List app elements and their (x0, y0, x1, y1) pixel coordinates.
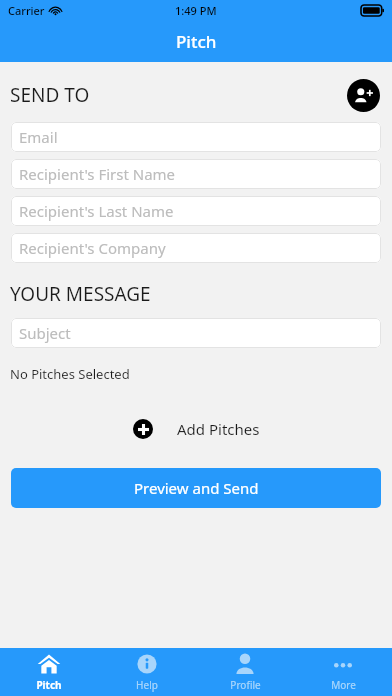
staticText: Preview and Send (134, 478, 259, 498)
button[interactable]: Recipient's First Name (11, 159, 381, 189)
staticText: Carrier (8, 3, 45, 18)
button[interactable]: Pitch (0, 648, 98, 696)
staticText: More (331, 678, 356, 692)
staticText: Pitch (176, 30, 217, 53)
button[interactable]: Email (11, 122, 381, 152)
button[interactable]: Recipient's Company (11, 233, 381, 263)
button[interactable]: Help (98, 648, 196, 696)
button[interactable]: More (294, 648, 392, 696)
staticText: Add Pitches (177, 419, 260, 439)
staticText: Recipient's First Name (19, 164, 176, 184)
button[interactable]: Preview and Send (11, 468, 381, 508)
button[interactable]: Recipient's Last Name (11, 196, 381, 226)
staticText: YOUR MESSAGE (10, 281, 151, 307)
staticText: 1:49 PM (175, 3, 217, 18)
staticText: Recipient's Company (19, 238, 166, 258)
button[interactable]: Add Pitches (125, 415, 268, 443)
staticText: Pitch (36, 678, 62, 692)
button[interactable]: Profile (196, 648, 294, 696)
staticText: Profile (230, 678, 261, 692)
staticText: SEND TO (10, 82, 90, 108)
staticText: Subject (19, 323, 71, 343)
staticText: Help (136, 678, 158, 692)
staticText: Email (19, 127, 58, 147)
button[interactable]: Subject (11, 318, 381, 348)
staticText: Recipient's Last Name (19, 201, 174, 221)
staticText: No Pitches Selected (10, 365, 130, 383)
button[interactable]: Add contact (347, 79, 380, 112)
